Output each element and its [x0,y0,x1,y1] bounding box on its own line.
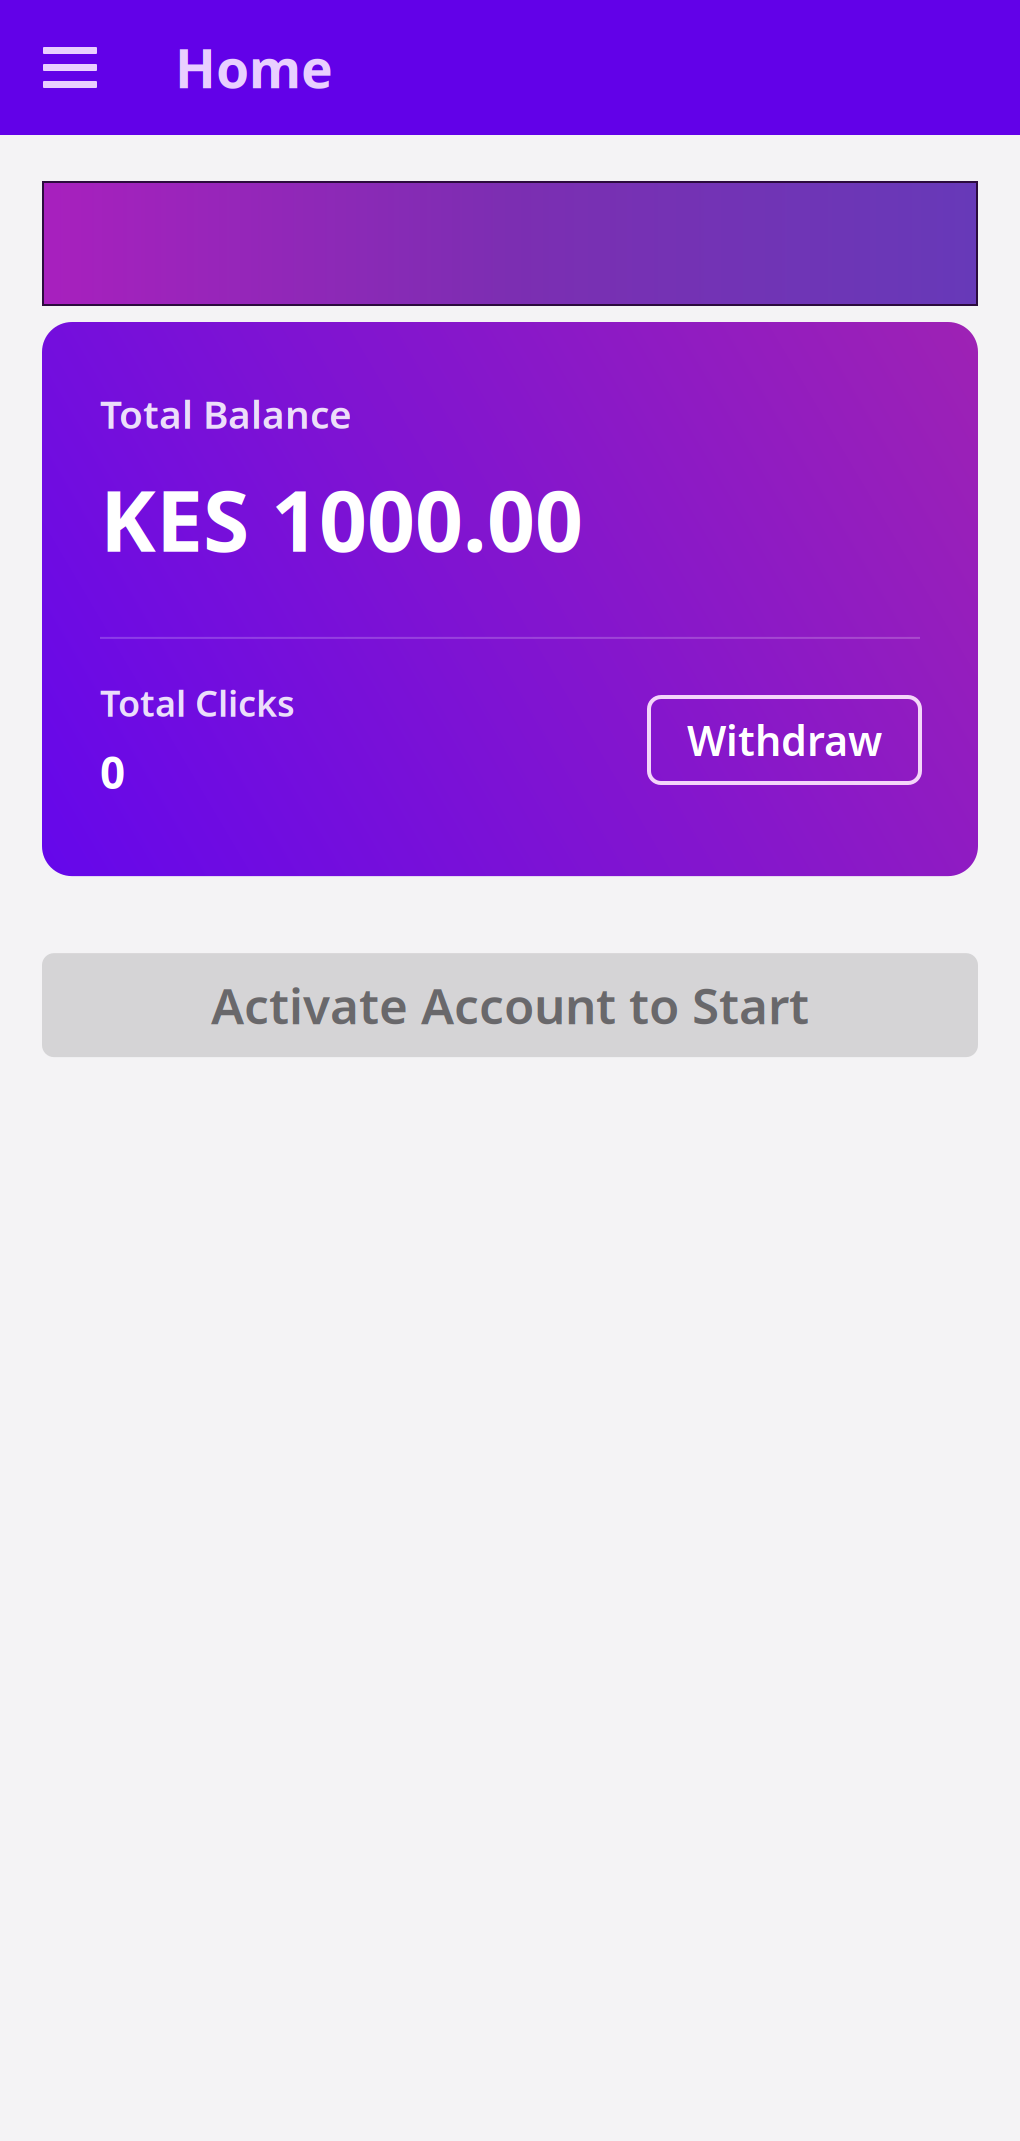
staticText: KES 1000.00 [100,463,583,575]
staticText: Withdraw [687,713,882,767]
button[interactable]: Open navigation menu [22,19,118,115]
staticText: 0 [100,743,125,801]
staticText: Total Clicks [100,679,295,727]
staticText: Activate Account to Start [211,972,809,1038]
staticText: Home [175,32,333,103]
staticText: Total Balance [100,388,352,439]
button[interactable]: Activate Account to Start [42,953,978,1057]
button[interactable]: Withdraw [649,697,920,783]
